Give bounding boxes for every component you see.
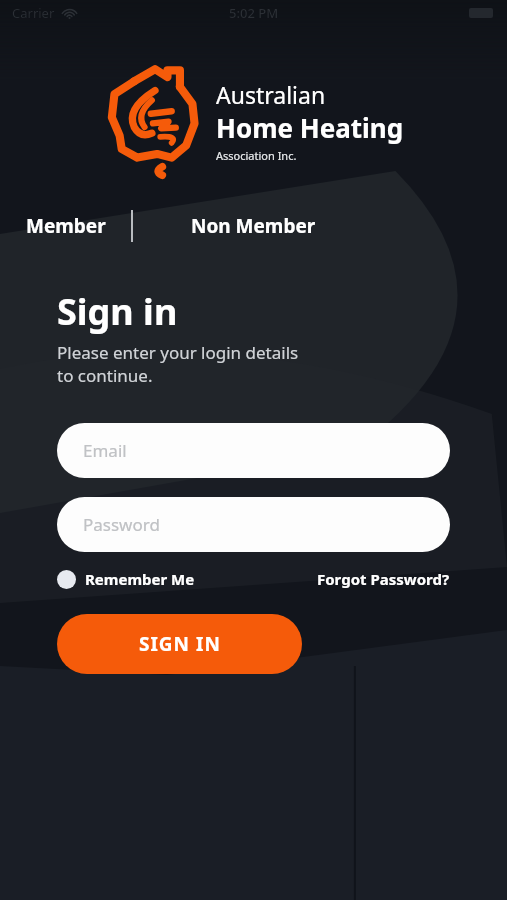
- staticText: Home Heating: [216, 110, 404, 145]
- staticText: Association Inc.: [216, 148, 297, 163]
- staticText: Sign in: [57, 287, 178, 336]
- button[interactable]: Forgot Password?: [317, 569, 450, 589]
- staticText: SIGN IN: [139, 631, 221, 657]
- staticText: Member: [26, 213, 106, 239]
- staticText: Australian: [216, 79, 326, 110]
- staticText: Password: [83, 513, 160, 536]
- staticText: Email: [83, 439, 127, 462]
- staticText: Non Member: [191, 213, 316, 239]
- staticText: Forgot Password?: [317, 569, 450, 589]
- button[interactable]: Remember Me: [57, 569, 195, 589]
- other: Australian Home Heating Association logo: [103, 60, 207, 182]
- button[interactable]: Email: [57, 423, 450, 478]
- button[interactable]: Non Member: [133, 204, 373, 248]
- staticText: 5:02 PM: [229, 4, 279, 22]
- staticText: Please enter your login details to conti…: [57, 341, 299, 387]
- staticText: Remember Me: [85, 569, 195, 589]
- staticText: Carrier: [12, 4, 55, 22]
- button[interactable]: SIGN IN: [57, 614, 302, 674]
- button[interactable]: Member: [0, 204, 131, 248]
- button[interactable]: Password: [57, 497, 450, 552]
